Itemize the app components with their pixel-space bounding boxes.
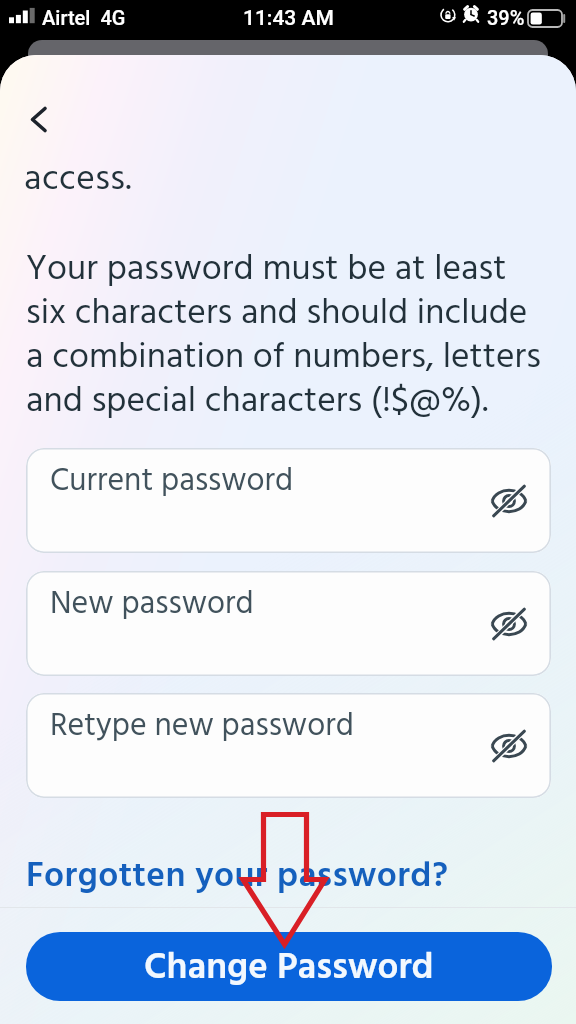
button[interactable]: Show password bbox=[487, 724, 531, 768]
staticText: Forgotten your password? bbox=[26, 849, 449, 906]
staticText: Retype new password bbox=[50, 701, 354, 752]
staticText: 11:43 AM bbox=[243, 6, 334, 31]
button[interactable]: Current password bbox=[26, 448, 551, 553]
staticText: Airtel 4G bbox=[42, 6, 126, 29]
staticText: access. bbox=[24, 152, 132, 209]
button[interactable]: Retype new password bbox=[26, 693, 551, 798]
button[interactable]: New password bbox=[26, 571, 551, 676]
button[interactable]: Back bbox=[16, 96, 62, 142]
button[interactable]: Forgotten your password? bbox=[18, 843, 457, 912]
button[interactable]: Show password bbox=[487, 602, 531, 646]
button[interactable]: Change Password bbox=[26, 932, 552, 1001]
staticText: 39% bbox=[487, 6, 525, 29]
staticText: Your password must be at least six chara… bbox=[26, 242, 541, 430]
staticText: Change Password bbox=[144, 939, 434, 998]
button[interactable]: Show password bbox=[487, 479, 531, 523]
staticText: Current password bbox=[50, 456, 294, 507]
staticText: New password bbox=[50, 579, 254, 630]
